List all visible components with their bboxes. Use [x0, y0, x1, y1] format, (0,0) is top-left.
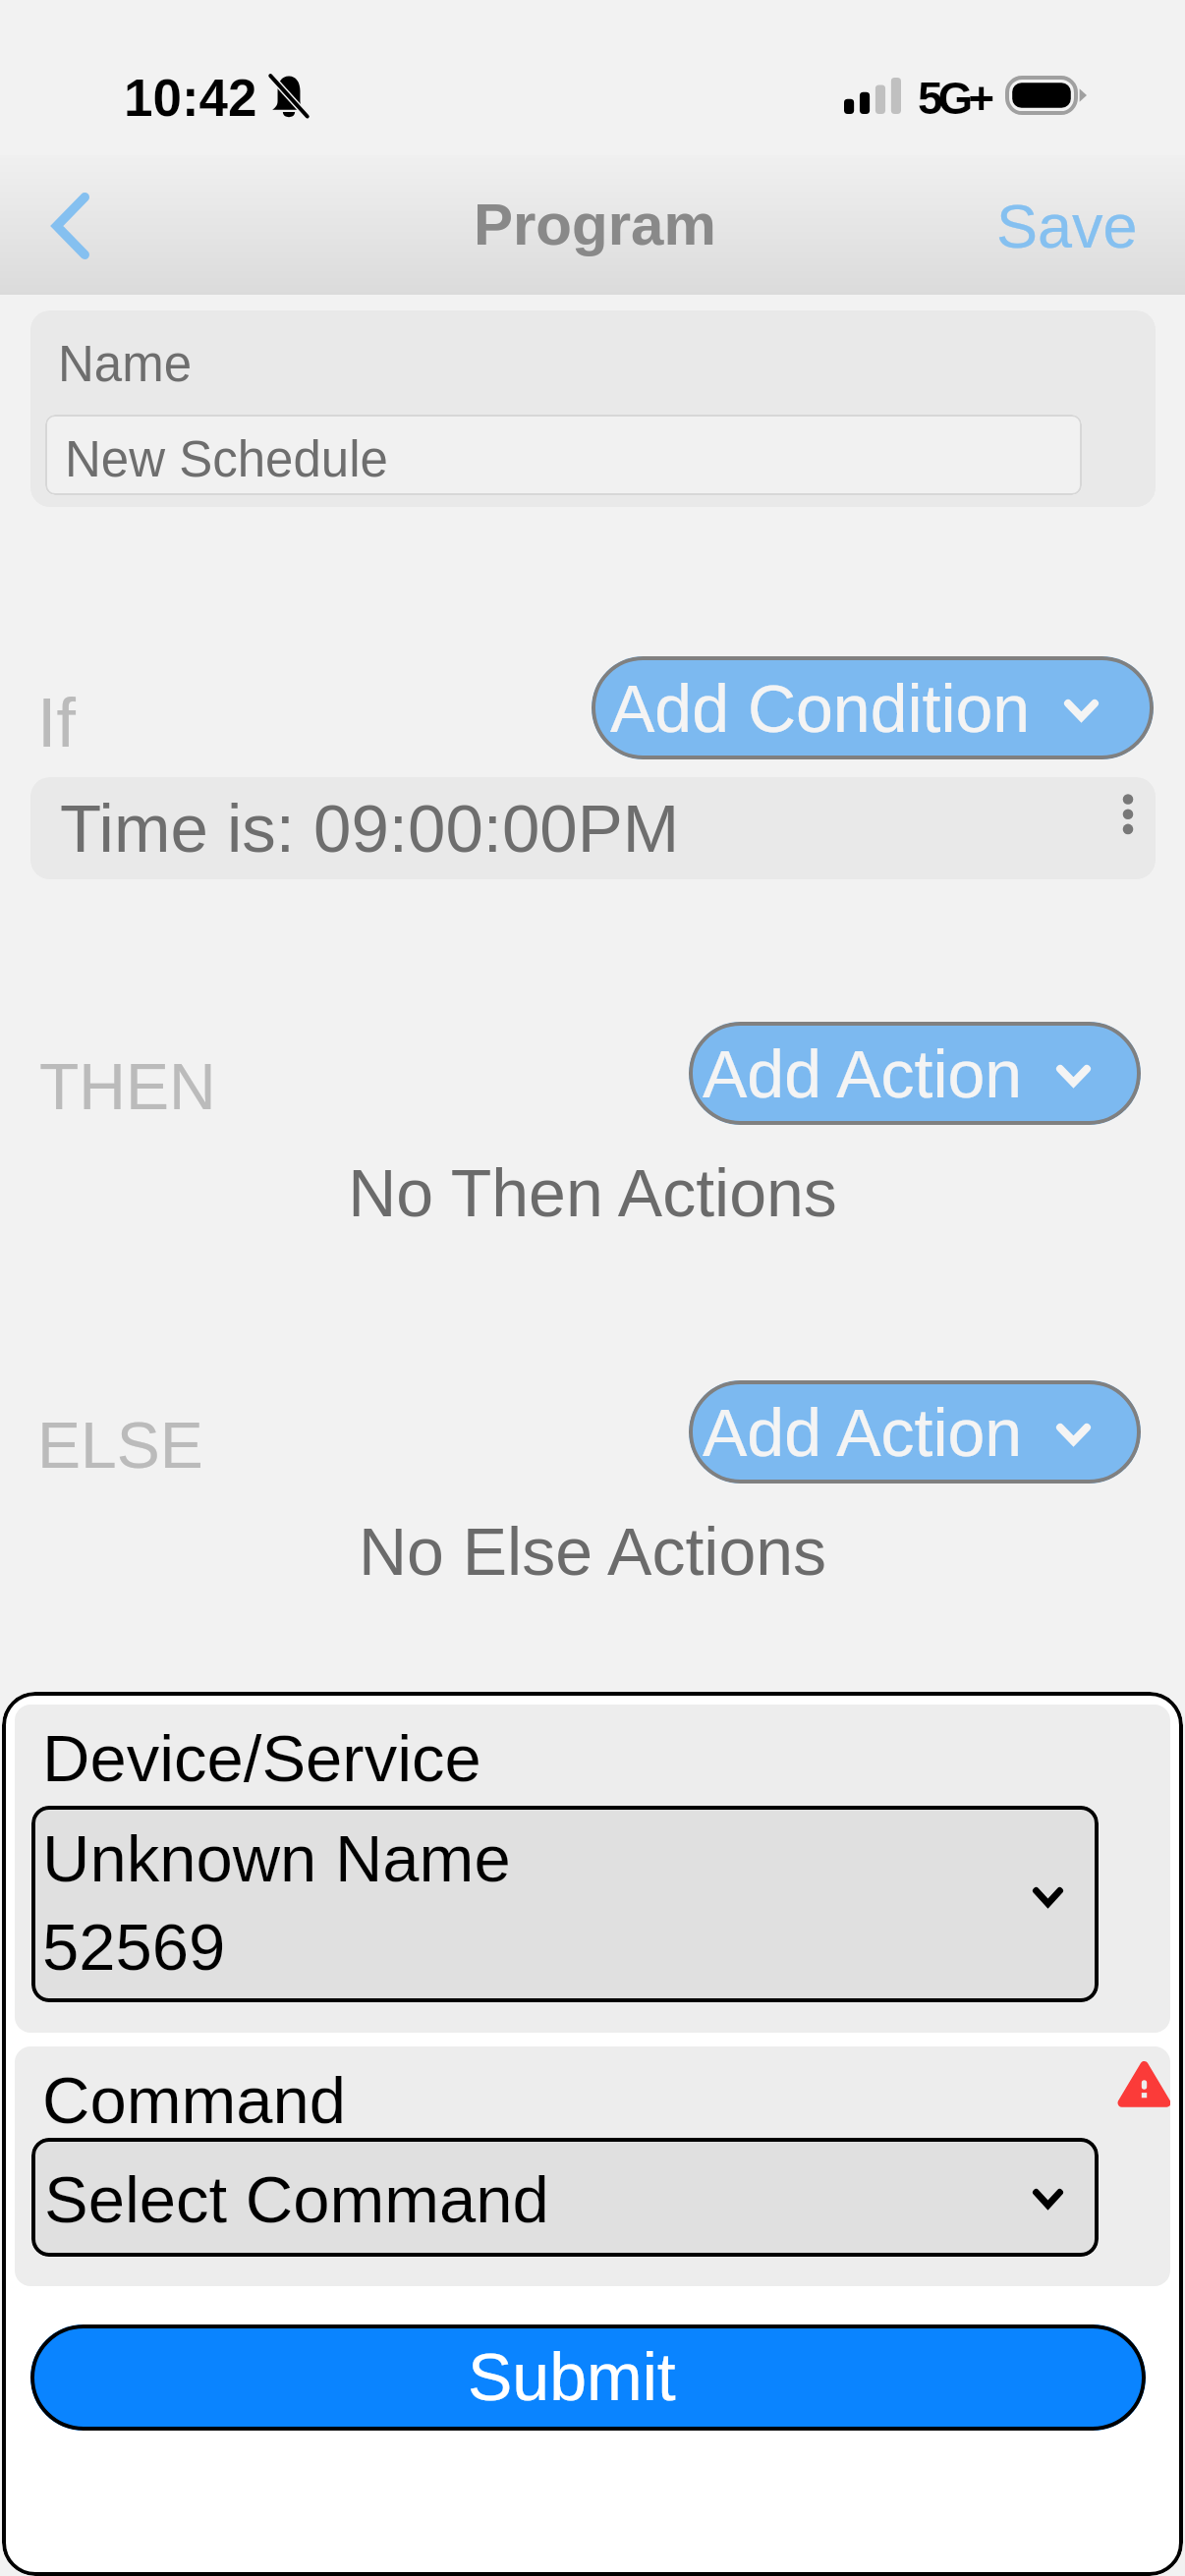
staticText: 10:42	[124, 69, 257, 127]
staticText: Add Condition	[610, 671, 1031, 746]
button[interactable]: Add Action	[689, 1022, 1141, 1125]
staticText: ELSE	[37, 1409, 203, 1482]
button[interactable]: New Schedule	[45, 415, 1082, 495]
staticText: Save	[996, 192, 1138, 260]
button[interactable]: Submit	[30, 2324, 1146, 2431]
staticText: 5G+	[918, 73, 990, 123]
staticText: Name	[58, 336, 193, 392]
staticText: THEN	[39, 1050, 216, 1123]
button[interactable]: Add Condition	[592, 656, 1154, 759]
staticText: 52569	[42, 1910, 226, 1984]
button[interactable]: Add Action	[689, 1380, 1141, 1484]
staticText: No Then Actions	[0, 1155, 1185, 1230]
staticText: If	[37, 685, 76, 761]
staticText: New Schedule	[65, 431, 388, 487]
button[interactable]: Back	[0, 155, 157, 295]
staticText: Command	[42, 2063, 347, 2137]
staticText: Select Command	[44, 2162, 549, 2236]
button[interactable]: More options	[1101, 777, 1155, 846]
button[interactable]: Save	[955, 155, 1185, 295]
staticText: Time is: 09:00:00PM	[60, 791, 680, 867]
staticText: No Else Actions	[0, 1514, 1185, 1589]
button[interactable]: Unknown Name	[31, 1806, 1099, 2002]
staticText: Add Action	[703, 1395, 1023, 1470]
staticText: Submit	[468, 2339, 676, 2414]
button[interactable]: Time is: 09:00:00PM	[30, 777, 1156, 879]
staticText: Add Action	[703, 1036, 1023, 1111]
button[interactable]: Select Command	[31, 2138, 1099, 2257]
staticText: Unknown Name	[42, 1821, 511, 1895]
staticText: Program	[474, 192, 716, 257]
staticText: Device/Service	[42, 1721, 481, 1795]
